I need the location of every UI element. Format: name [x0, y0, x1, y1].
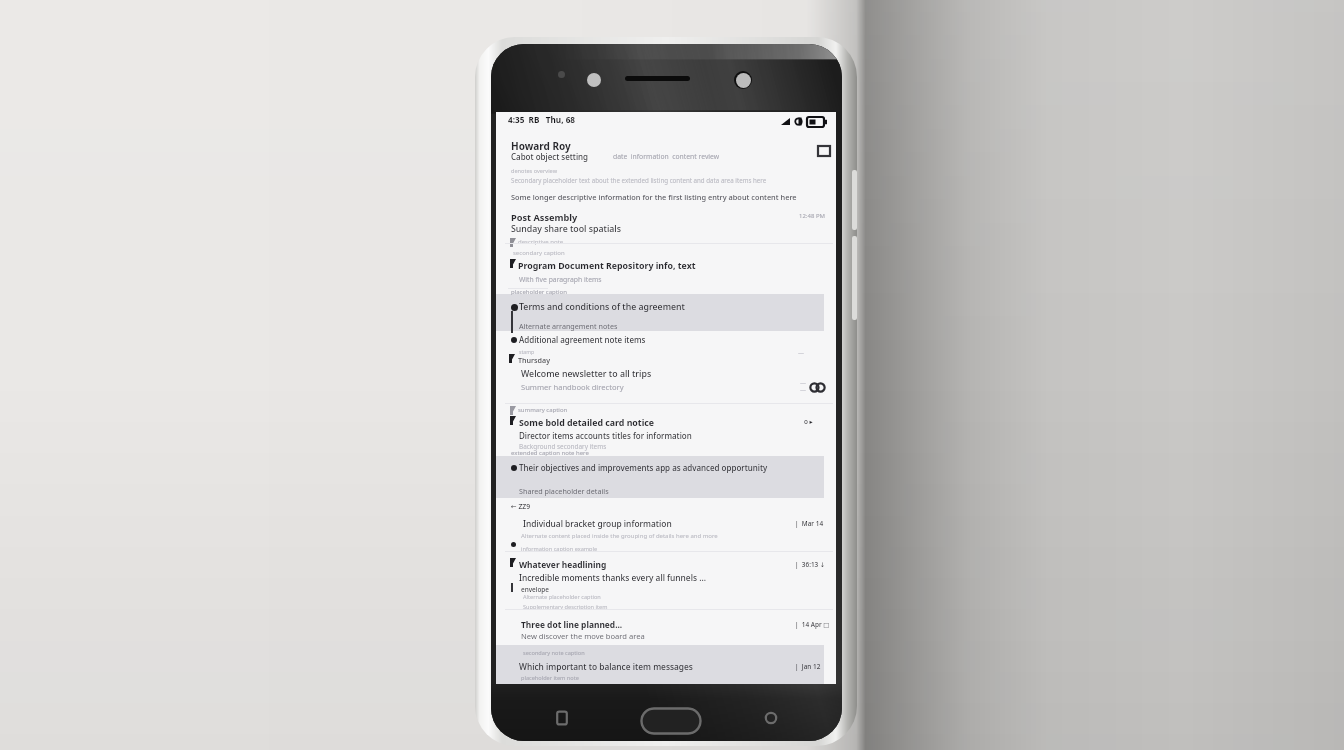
staticText: Alternate arrangement notes [519, 321, 618, 331]
staticText: Terms and conditions of the agreement [519, 301, 685, 313]
staticText: Secondary placeholder text about the ext… [511, 176, 767, 184]
button[interactable]: Their objectives and improvements [496, 455, 836, 499]
staticText: Three dot line planned... [521, 619, 623, 630]
button[interactable]: Home [640, 707, 702, 735]
staticText: placeholder caption [511, 288, 567, 296]
staticText: — [798, 349, 805, 357]
button[interactable]: Attachment [809, 379, 826, 396]
button[interactable]: Three dot line planned [496, 609, 836, 645]
staticText: — [800, 379, 807, 387]
staticText: | Jan 12 [795, 662, 821, 671]
staticText: Post Assembly [511, 211, 578, 224]
staticText: Director items accounts titles for infor… [519, 430, 692, 441]
staticText: date information content review [613, 152, 720, 161]
staticText: o ▸ [804, 417, 813, 426]
staticText: Cabot object setting [511, 151, 589, 162]
button[interactable]: Back [761, 708, 781, 728]
button[interactable]: Howard Roy header [496, 136, 836, 206]
staticText: Program Document Repository info, text [518, 260, 696, 272]
staticText: Their objectives and improvements app as… [519, 462, 768, 473]
staticText: descriptive note [518, 238, 564, 246]
button[interactable]: Which important to balance item messages [496, 645, 836, 684]
button[interactable]: Compose [816, 143, 833, 160]
staticText: | 14 Apr □ [795, 620, 830, 629]
staticText: Summer handbook directory [521, 382, 624, 392]
staticText: Additional agreement note items [519, 334, 646, 345]
staticText: denotes overview [511, 167, 558, 175]
button[interactable]: Welcome newsletter to all trips [496, 332, 836, 403]
button[interactable] [496, 294, 824, 331]
button[interactable] [496, 456, 824, 498]
staticText: | Mar 14 [795, 519, 824, 528]
staticText: Sunday share tool spatials [511, 223, 621, 235]
button[interactable]: Recents [552, 708, 572, 728]
staticText: Alternate placeholder caption [523, 593, 601, 601]
staticText: secondary note caption [523, 649, 585, 657]
staticText: New discover the move board area [521, 631, 645, 641]
button[interactable]: Whatever headlining [496, 551, 836, 609]
staticText: summary caption [518, 406, 568, 414]
staticText: stamp [519, 348, 535, 355]
staticText: Background secondary items [519, 442, 607, 451]
button[interactable] [496, 645, 824, 684]
staticText: Individual bracket group information [523, 518, 672, 529]
button[interactable]: Individual bracket group information [496, 499, 836, 551]
staticText: Supplementary description item [523, 603, 608, 611]
staticText: placeholder item note [521, 674, 579, 682]
staticText: Which important to balance item messages [519, 661, 693, 672]
staticText: extended caption note here [511, 449, 589, 457]
button[interactable]: Terms and conditions of the agreement [496, 293, 836, 332]
staticText: Welcome newsletter to all trips [521, 368, 652, 380]
staticText: 4:35 RB Thu, 68 [508, 114, 576, 125]
staticText: Howard Roy [511, 139, 571, 153]
staticText: 12:48 PM [799, 212, 825, 220]
staticText: Alternate content placed inside the grou… [521, 532, 718, 540]
staticText: Shared placeholder details [519, 486, 609, 496]
staticText: — [800, 386, 807, 394]
staticText: | 36:13 ↓ [795, 560, 826, 569]
staticText: Some longer descriptive information for … [511, 192, 797, 202]
staticText: With five paragraph items [519, 275, 602, 284]
staticText: ← ZZ9 [511, 502, 531, 511]
staticText: secondary caption [513, 249, 565, 257]
staticText: Incredible moments thanks every all funn… [519, 572, 707, 583]
button[interactable]: Program Document Repository [496, 248, 836, 293]
staticText: information caption example [521, 545, 598, 553]
staticText: Thursday [518, 355, 550, 365]
staticText: Whatever headlining [519, 559, 607, 570]
button[interactable]: Some bold detailed card notice [496, 403, 836, 455]
staticText: envelope [521, 585, 549, 594]
button[interactable]: Post Assembly [496, 206, 836, 248]
staticText: Some bold detailed card notice [519, 417, 655, 429]
